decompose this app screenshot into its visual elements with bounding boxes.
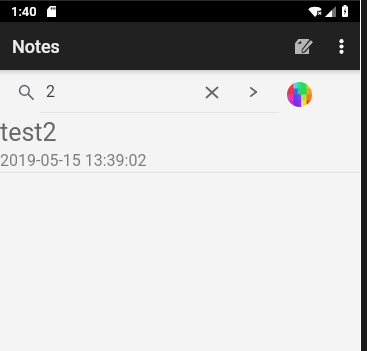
button[interactable]: New note [282,22,320,70]
staticText: 2019-05-15 13:39:02 [0,151,147,170]
button[interactable]: Next result [236,74,271,109]
button[interactable]: More options [320,22,360,70]
staticText: test2 [0,118,57,147]
staticText: Notes [12,36,60,57]
staticText: 1:40 [11,4,37,19]
button[interactable]: Account [282,77,317,112]
button[interactable]: Clear search [194,74,230,110]
staticText: 2 [46,82,55,101]
button[interactable]: test2 [0,113,360,173]
button[interactable]: Search [8,74,43,109]
